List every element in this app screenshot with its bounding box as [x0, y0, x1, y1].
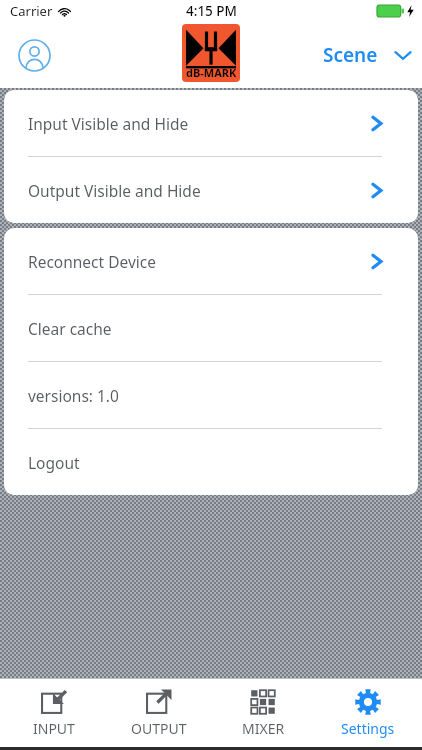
- staticText: Clear cache: [28, 318, 112, 339]
- button[interactable]: Clear cache: [4, 295, 418, 361]
- staticText: Settings: [341, 719, 395, 738]
- staticText: Carrier: [10, 2, 53, 20]
- staticText: Input Visible and Hide: [28, 113, 189, 134]
- button[interactable]: Logout: [4, 429, 418, 495]
- staticText: OUTPUT: [131, 719, 187, 738]
- button[interactable]: Scene: [323, 42, 412, 68]
- staticText: INPUT: [33, 719, 75, 738]
- staticText: MIXER: [242, 719, 285, 738]
- button[interactable]: INPUT: [4, 679, 104, 747]
- button[interactable]: versions: 1.0: [4, 362, 418, 428]
- button[interactable]: Input Visible and Hide: [4, 90, 418, 156]
- button[interactable]: OUTPUT: [109, 679, 209, 747]
- staticText: 4:15 PM: [186, 2, 237, 20]
- staticText: dB-MARK: [186, 65, 237, 80]
- staticText: Scene: [323, 42, 378, 68]
- button[interactable]: MIXER: [213, 679, 313, 747]
- button[interactable]: Output Visible and Hide: [4, 157, 418, 223]
- button[interactable]: Reconnect Device: [4, 228, 418, 294]
- staticText: Output Visible and Hide: [28, 180, 201, 201]
- staticText: Logout: [28, 452, 80, 473]
- button[interactable]: dB-MARK logo: [182, 24, 240, 82]
- button[interactable]: Settings: [318, 679, 418, 747]
- button[interactable]: Profile: [14, 35, 54, 75]
- staticText: Reconnect Device: [28, 251, 156, 272]
- staticText: versions: 1.0: [28, 385, 119, 406]
